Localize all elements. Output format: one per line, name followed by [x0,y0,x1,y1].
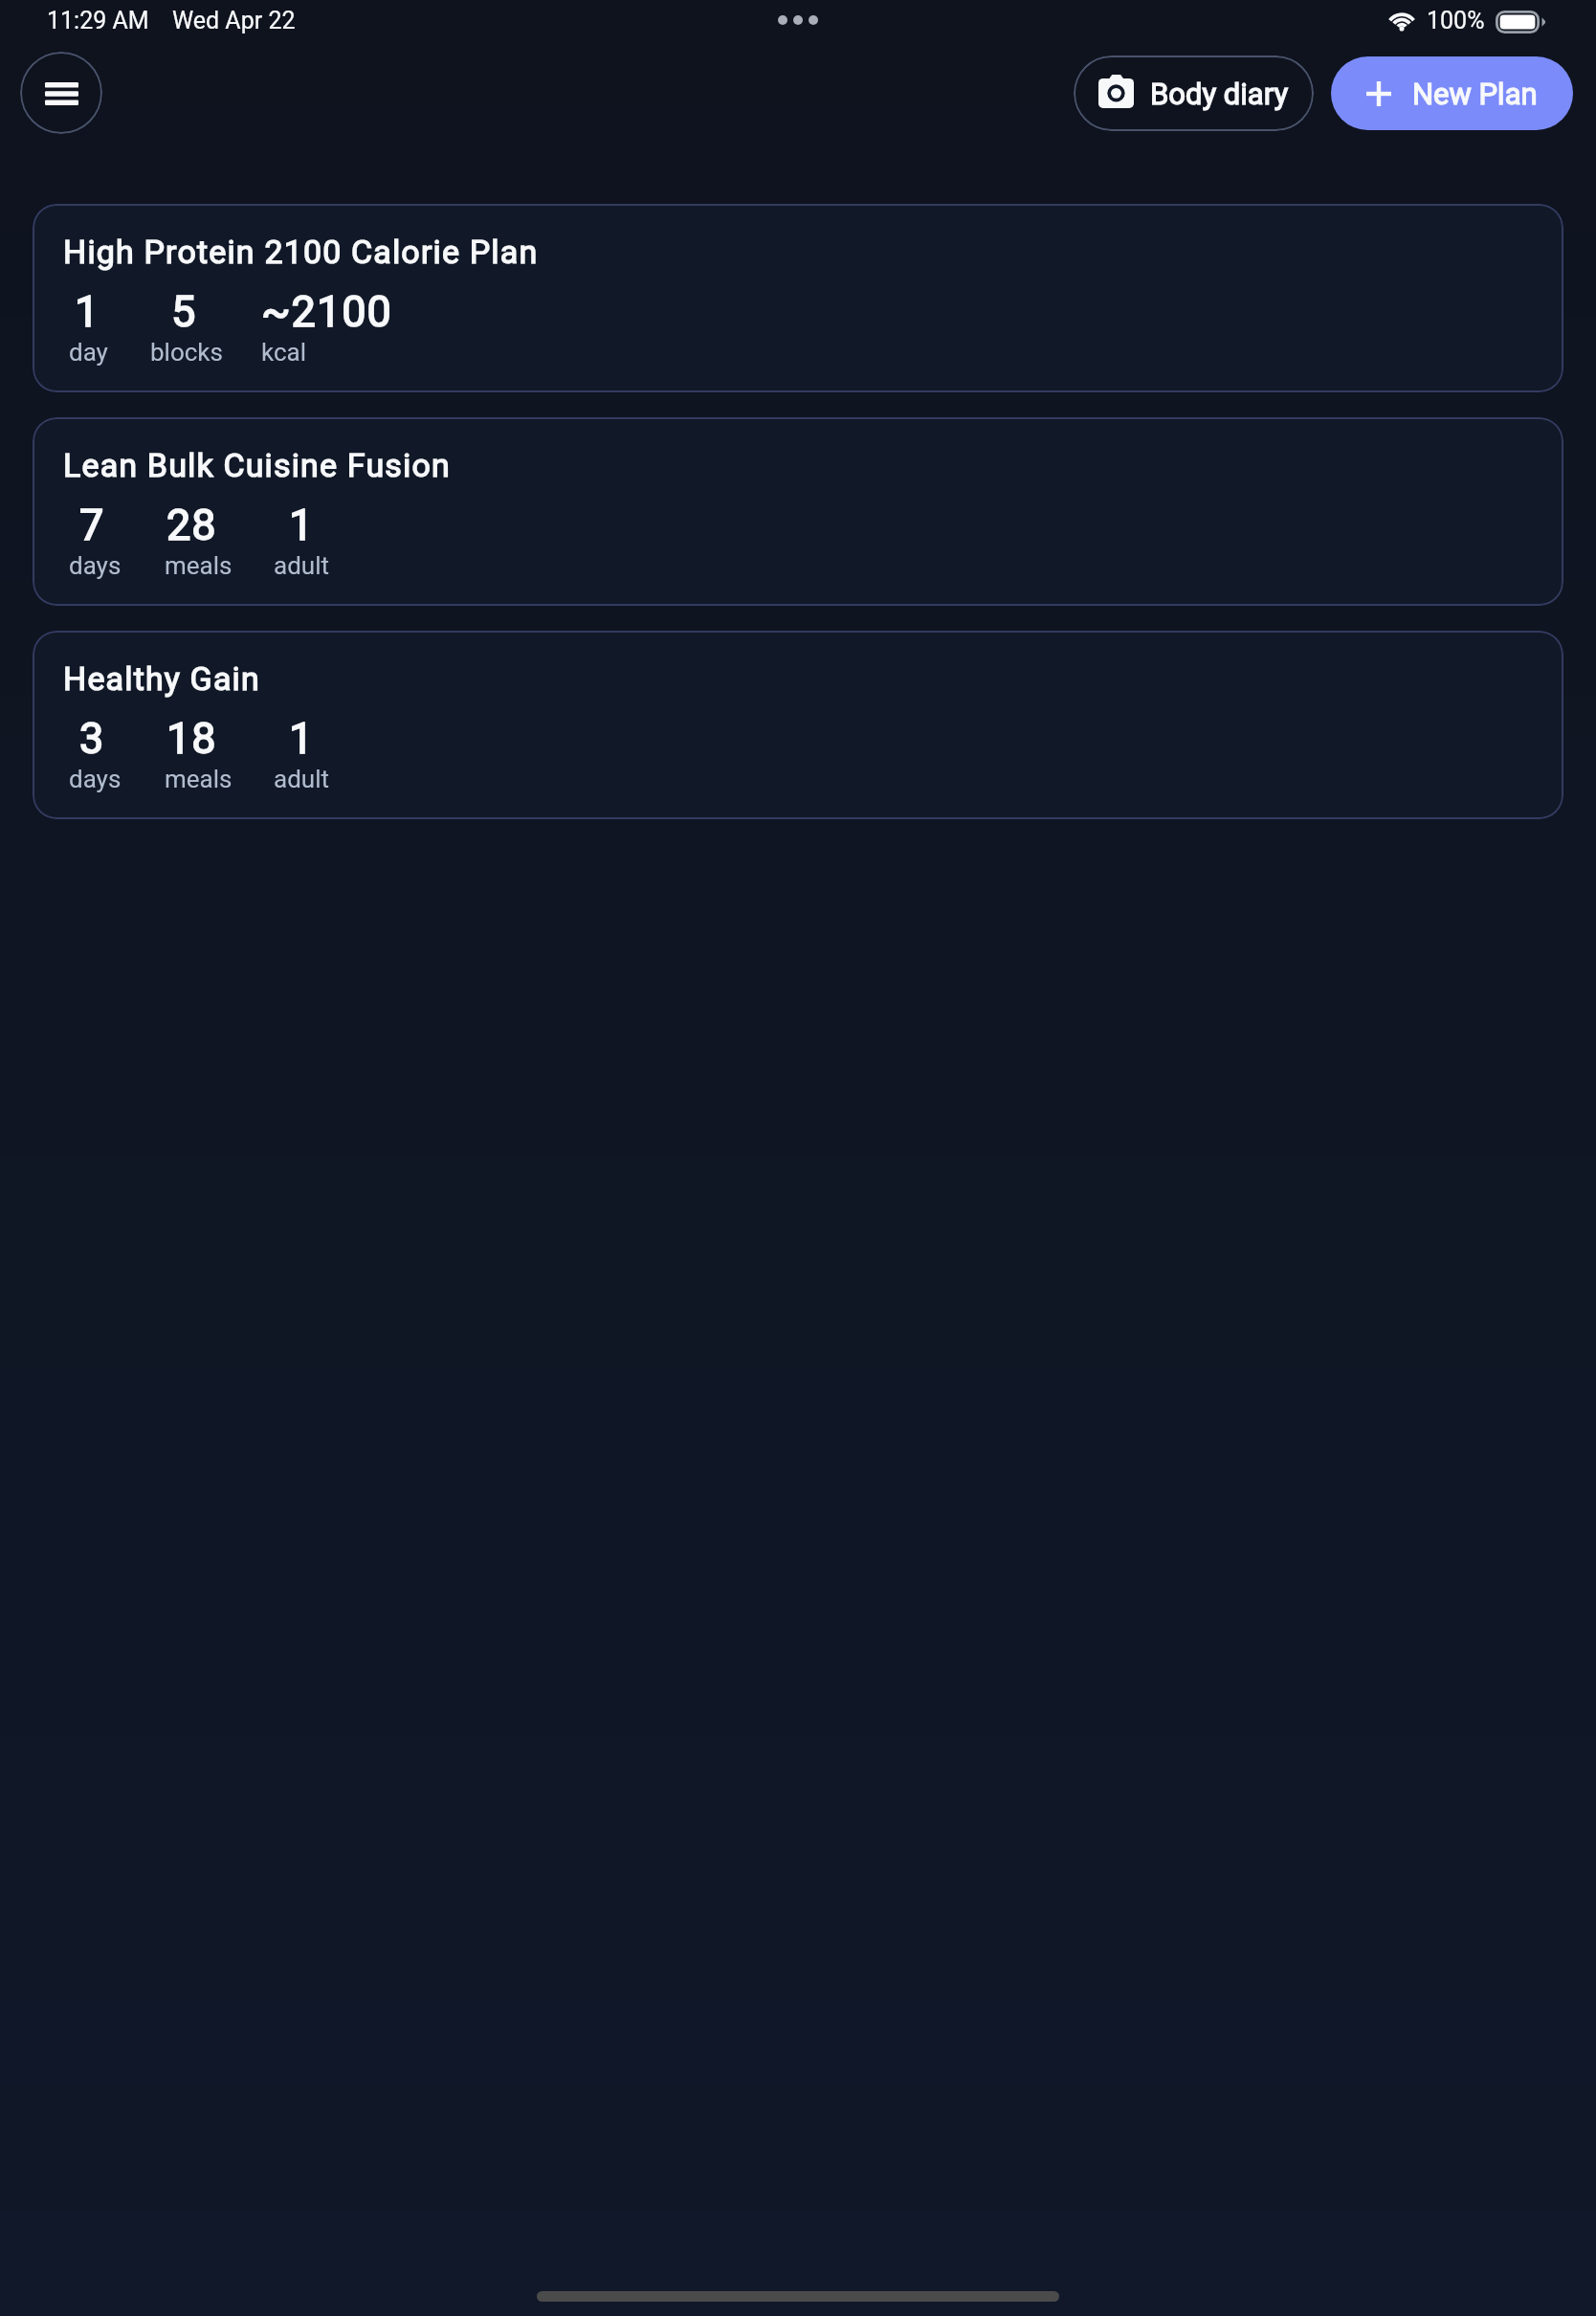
staticText: New Plan [1412,77,1538,111]
staticText: days [69,765,122,793]
button[interactable]: Healthy Gain [33,631,1563,819]
staticText: Wed Apr 22 [172,7,296,34]
staticText: Lean Bulk Cuisine Fusion [63,446,451,484]
staticText: Healthy Gain [63,659,260,698]
staticText: 3 [79,713,105,765]
button[interactable]: Body diary [1074,56,1314,131]
staticText: 1 [75,286,100,338]
staticText: ~2100 [261,286,392,338]
staticText: 1 [289,500,315,551]
button[interactable]: New Plan [1331,56,1573,130]
button[interactable]: Lean Bulk Cuisine Fusion [33,417,1563,606]
staticText: adult [274,765,329,793]
button[interactable]: High Protein 2100 Calorie Plan [33,204,1563,392]
staticText: 7 [79,500,105,551]
staticText: 5 [171,286,197,338]
staticText: kcal [261,338,306,367]
staticText: days [69,551,122,580]
staticText: High Protein 2100 Calorie Plan [63,233,539,271]
staticText: 11:29 AM [47,7,149,34]
staticText: 1 [289,713,315,765]
staticText: adult [274,551,329,580]
staticText: 28 [166,500,217,551]
staticText: 100% [1427,7,1485,34]
staticText: Body diary [1150,77,1289,111]
staticText: blocks [150,338,223,367]
button[interactable]: Menu [20,52,102,134]
staticText: meals [165,765,233,793]
staticText: 18 [166,713,217,765]
staticText: day [69,338,108,367]
staticText: meals [165,551,233,580]
